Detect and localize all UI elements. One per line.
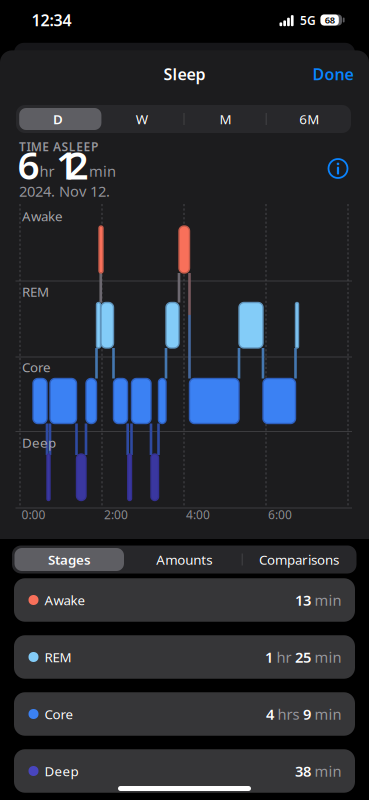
staticText: Stages: [48, 551, 91, 568]
staticText: Comparisons: [259, 551, 339, 568]
staticText: 4:00: [186, 506, 210, 522]
staticText: 13: [295, 590, 311, 610]
staticText: 2:00: [104, 506, 128, 522]
button[interactable]: M: [183, 105, 267, 133]
staticText: Core: [22, 358, 51, 376]
staticText: 6: [17, 139, 39, 190]
staticText: M: [219, 110, 231, 128]
staticText: Core: [44, 705, 73, 723]
staticText: TIME ASLEEP: [19, 138, 98, 154]
button[interactable]: Done: [312, 63, 353, 85]
staticText: min: [89, 161, 116, 181]
staticText: 68: [325, 14, 335, 26]
staticText: 6M: [299, 110, 319, 128]
button[interactable]: W: [100, 105, 184, 133]
staticText: min: [314, 590, 341, 610]
staticText: 25: [295, 647, 311, 667]
staticText: min: [314, 761, 341, 781]
staticText: min: [314, 704, 341, 724]
staticText: 9: [303, 704, 311, 724]
staticText: Done: [312, 63, 353, 85]
staticText: REM: [22, 283, 49, 300]
button[interactable]: 6M: [267, 105, 351, 133]
staticText: min: [314, 647, 341, 667]
button[interactable]: About Sleep: [327, 157, 349, 179]
staticText: 2024. Nov 12.: [19, 181, 110, 201]
staticText: 0:00: [21, 506, 45, 522]
staticText: REM: [44, 648, 71, 666]
staticText: 12:34: [31, 9, 71, 31]
staticText: Amounts: [156, 551, 212, 568]
staticText: W: [136, 110, 148, 128]
staticText: 1: [265, 647, 273, 667]
button[interactable]: D: [16, 105, 100, 133]
staticText: hr: [276, 647, 291, 667]
staticText: Awake: [44, 591, 85, 609]
staticText: D: [53, 110, 63, 128]
staticText: 5G: [300, 12, 316, 28]
staticText: hrs: [277, 704, 299, 724]
staticText: Deep: [44, 762, 78, 780]
staticText: Sleep: [163, 63, 205, 85]
staticText: hr: [39, 161, 54, 181]
staticText: 6:00: [268, 506, 292, 522]
staticText: 2: [66, 139, 88, 190]
staticText: 4: [266, 704, 274, 724]
staticText: Awake: [22, 207, 63, 225]
button[interactable]: Comparisons: [242, 545, 356, 573]
staticText: 38: [295, 761, 311, 781]
staticText: 1: [56, 139, 78, 190]
button[interactable]: Stages: [12, 545, 127, 573]
button[interactable]: Amounts: [127, 545, 242, 573]
staticText: Deep: [22, 434, 56, 451]
